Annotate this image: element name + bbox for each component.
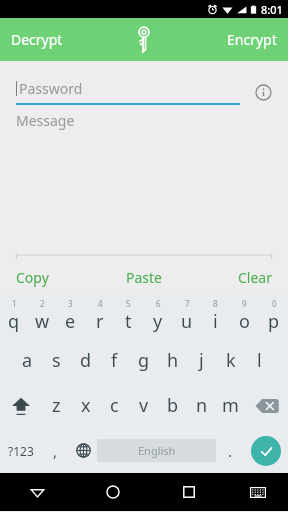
button[interactable]: k [216,338,245,383]
staticText: r [96,309,104,334]
staticText: l [257,348,262,373]
staticText: b [167,393,179,418]
staticText: q [8,309,20,334]
staticText: p [268,309,280,334]
button[interactable]: 6 [143,293,172,338]
button[interactable]: j [187,338,216,383]
button[interactable]: Key [132,23,156,57]
staticText: 9 [242,298,247,309]
staticText: 8:01 [261,2,283,17]
staticText: c [110,393,119,418]
staticText: Copy [16,268,49,287]
button[interactable]: Recent apps [151,473,227,511]
button[interactable]: x [71,383,100,428]
button[interactable]: 4 [85,293,114,338]
staticText: , [53,441,58,461]
button[interactable]: Back [0,473,75,511]
button[interactable]: Clear [192,264,288,290]
staticText: y [153,309,163,334]
staticText: a [22,348,33,373]
button[interactable]: 2 [28,293,56,338]
staticText: 1 [12,298,17,309]
staticText: Clear [238,268,272,287]
button[interactable]: 5 [114,293,143,338]
button[interactable]: a [13,338,42,383]
button[interactable]: . [216,428,244,473]
staticText: k [226,348,236,373]
button[interactable]: f [100,338,129,383]
button[interactable]: 1 [0,293,28,338]
staticText: 5 [126,298,131,309]
staticText: English [138,443,176,458]
button[interactable]: Info [250,79,276,105]
button[interactable]: Backspace [245,383,288,428]
staticText: m [222,393,239,418]
button[interactable]: Shift [0,383,42,428]
staticText: Encrypt [227,30,277,49]
button[interactable]: g [129,338,158,383]
staticText: x [81,393,91,418]
staticText: . [228,441,233,461]
staticText: o [239,309,250,334]
staticText: v [139,393,149,418]
staticText: i [213,309,218,334]
staticText: ?123 [8,443,34,459]
button[interactable]: s [42,338,71,383]
button[interactable]: l [245,338,274,383]
button[interactable]: n [187,383,216,428]
button[interactable]: English [97,439,216,462]
staticText: Decrypt [11,30,63,49]
staticText: e [65,309,76,334]
button[interactable]: 3 [56,293,85,338]
button[interactable]: Done [244,428,288,473]
staticText: g [138,348,150,373]
button[interactable]: d [71,338,100,383]
button[interactable]: Hide keyboard [227,473,288,511]
button[interactable]: Copy [0,264,96,290]
button[interactable]: m [216,383,245,428]
button[interactable]: 9 [230,293,259,338]
staticText: u [181,309,193,334]
staticText: d [80,348,92,373]
staticText: t [125,309,132,334]
button[interactable]: 8 [201,293,230,338]
button[interactable]: Password [16,79,240,105]
staticText: s [52,348,61,373]
staticText: 6 [156,298,161,309]
staticText: z [52,393,61,418]
staticText: 3 [68,298,73,309]
staticText: f [111,348,118,373]
staticText: w [35,309,50,334]
staticText: Password [19,79,83,98]
staticText: Paste [126,268,162,287]
staticText: 7 [185,298,190,309]
button[interactable]: ?123 [0,428,41,473]
button[interactable]: Message [16,111,272,256]
staticText: Message [16,111,75,130]
button[interactable]: , [41,428,69,473]
button[interactable]: Decrypt [0,20,74,59]
button[interactable]: z [42,383,71,428]
button[interactable]: Home [75,473,151,511]
staticText: j [199,348,204,373]
button[interactable]: 7 [172,293,201,338]
button[interactable]: b [158,383,187,428]
staticText: 0 [272,298,277,309]
button[interactable]: 0 [259,293,288,338]
staticText: 8 [213,298,218,309]
button[interactable]: h [158,338,187,383]
button[interactable]: v [129,383,158,428]
button[interactable]: c [100,383,129,428]
button[interactable]: Paste [96,264,192,290]
staticText: 4 [98,298,103,309]
staticText: h [167,348,179,373]
staticText: n [196,393,208,418]
staticText: 2 [40,298,45,309]
button[interactable]: Encrypt [216,20,288,59]
button[interactable]: Change language [69,428,97,473]
